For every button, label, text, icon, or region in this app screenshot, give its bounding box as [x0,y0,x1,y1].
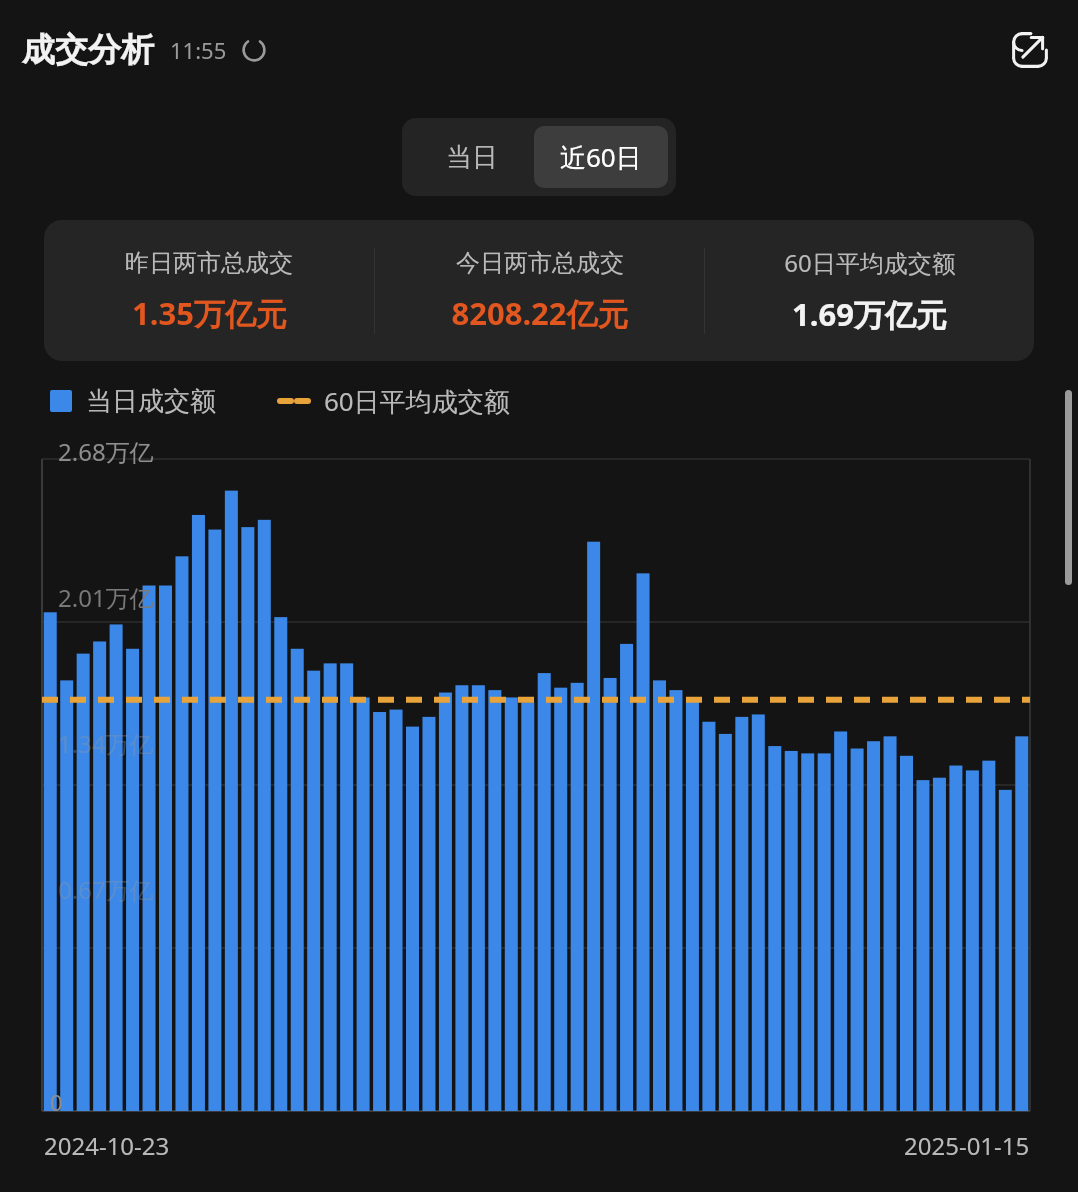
button[interactable]: 昨日两市总成交 [44,220,1034,361]
staticText: 2.01万亿 [58,581,154,614]
staticText: 1.34万亿 [58,727,154,760]
staticText: 60日平均成交额 [324,383,510,419]
staticText: 今日两市总成交 [456,248,624,278]
staticText: 1.35万亿元 [132,292,287,334]
staticText: 成交分析 [22,29,154,71]
staticText: 11:55 [170,35,227,65]
staticText: 近60日 [560,139,642,175]
button[interactable]: Refresh [237,33,271,67]
staticText: 0 [50,1087,63,1117]
staticText: 1.69万亿元 [792,293,947,335]
staticText: 当日 [446,141,498,174]
staticText: 60日平均成交额 [784,246,956,279]
staticText: 2025-01-15 [904,1129,1030,1162]
button[interactable]: 近60日 [534,126,668,188]
staticText: 当日成交额 [86,385,216,418]
staticText: 2.68万亿 [58,435,154,468]
staticText: 昨日两市总成交 [125,248,293,278]
button[interactable]: 当日 [410,128,534,187]
staticText: 0.67万亿 [58,873,154,906]
staticText: 2024-10-23 [44,1129,170,1162]
staticText: 8208.22亿元 [451,292,629,334]
button[interactable]: Share [1002,22,1058,78]
